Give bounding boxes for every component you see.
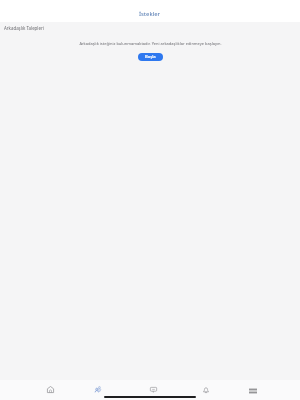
button[interactable]: Başla: [138, 53, 163, 61]
staticText: Arkadaşlık isteğiniz bulunmamaktadır. Ye…: [79, 41, 222, 46]
button[interactable]: Messages: [146, 382, 161, 397]
staticText: Başla: [145, 54, 156, 60]
button[interactable]: Notifications: [198, 382, 213, 397]
button[interactable]: Menu: [245, 383, 260, 398]
staticText: Arkadaşlık Talepleri: [4, 25, 44, 31]
button[interactable]: Home: [43, 382, 58, 397]
button[interactable]: Friends: [90, 382, 105, 397]
staticText: İstekler: [139, 10, 161, 18]
